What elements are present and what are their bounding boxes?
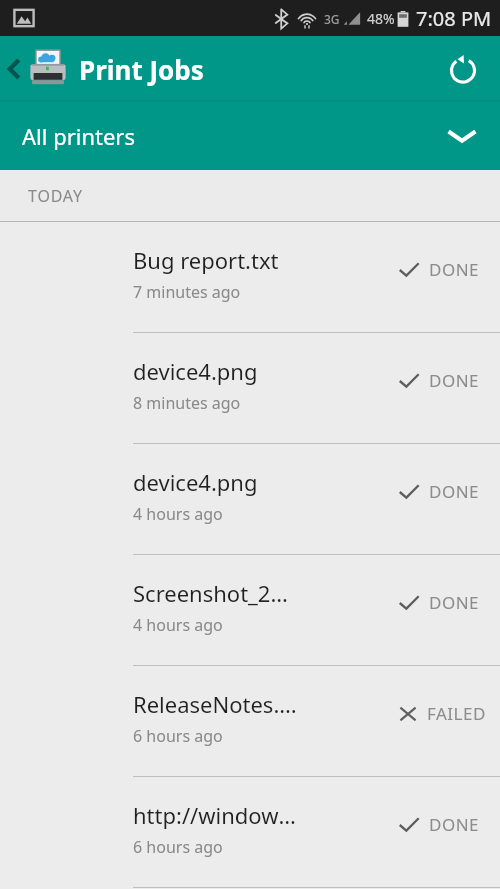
- button[interactable]: Refresh: [440, 46, 486, 92]
- staticText: All printers: [22, 121, 135, 151]
- staticText: DONE: [429, 480, 480, 503]
- staticText: 6 hours ago: [133, 836, 223, 858]
- staticText: http://windows.microsof..: [133, 800, 300, 830]
- staticText: DONE: [429, 813, 480, 836]
- staticText: ReleaseNotes.bmp: [133, 689, 300, 719]
- staticText: 48%: [367, 9, 395, 28]
- button[interactable]: Screenshot_2014-04-21-..: [0, 555, 500, 666]
- staticText: 6 hours ago: [133, 725, 223, 747]
- staticText: 4 hours ago: [133, 503, 223, 525]
- staticText: 7:08 PM: [416, 5, 492, 32]
- staticText: 4 hours ago: [133, 614, 223, 636]
- staticText: DONE: [429, 369, 480, 392]
- button[interactable]: Bug report.txt: [0, 222, 500, 333]
- button[interactable]: Back: [0, 44, 26, 94]
- staticText: device4.png: [133, 467, 258, 497]
- staticText: DONE: [429, 591, 480, 614]
- staticText: Bug report.txt: [133, 245, 279, 275]
- staticText: 7 minutes ago: [133, 281, 241, 303]
- button[interactable]: device4.png: [0, 333, 500, 444]
- button[interactable]: ReleaseNotes.bmp: [0, 666, 500, 777]
- staticText: DONE: [429, 258, 480, 281]
- button[interactable]: device4.png: [0, 444, 500, 555]
- staticText: Screenshot_2014-04-21-..: [133, 578, 300, 608]
- staticText: device4.png: [133, 356, 258, 386]
- staticText: 3G: [324, 11, 340, 27]
- staticText: Print Jobs: [79, 52, 204, 87]
- staticText: FAILED: [427, 702, 486, 725]
- staticText: TODAY: [28, 185, 83, 207]
- button[interactable]: All printers: [0, 102, 500, 170]
- staticText: 8 minutes ago: [133, 392, 241, 414]
- button[interactable]: http://windows.microsof..: [0, 777, 500, 888]
